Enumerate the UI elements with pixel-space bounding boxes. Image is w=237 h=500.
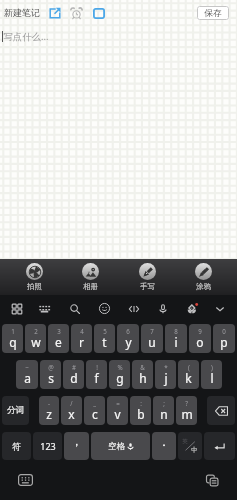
staticText: & [140,363,145,371]
staticText: 5 [103,327,107,335]
staticText: 1 [11,327,15,335]
staticText: 符 [12,441,21,452]
staticText: 写点什么... [3,30,49,43]
staticText: 0 [222,327,226,335]
button[interactable]: Search [64,298,85,319]
button[interactable]: Emoji [94,298,115,319]
button[interactable]: ~ [16,360,38,389]
staticText: i [174,334,178,350]
button[interactable]: Backspace [207,396,235,425]
staticText: t [102,334,107,350]
button[interactable]: Stickers [182,298,203,319]
button[interactable]: * [155,360,176,389]
staticText: 8 [174,327,178,335]
staticText: a [24,370,31,386]
button[interactable]: 0 [213,324,235,353]
button[interactable]: ! [86,360,107,389]
staticText: 保存 [204,8,222,19]
staticText: 空格 [108,441,125,452]
staticText: % [117,363,123,371]
staticText: b [137,406,145,422]
button[interactable]: 保存 [197,6,229,20]
button[interactable]: : [130,396,151,425]
button[interactable]: # [63,360,84,389]
button[interactable]: % [109,360,130,389]
staticText: s [48,370,54,386]
button[interactable]: Keyboard [13,468,37,492]
button[interactable]: Clipboard [123,298,144,319]
button[interactable]: ; [153,396,174,425]
staticText: 涂鸦 [196,282,211,291]
button[interactable]: 空格 [91,432,150,460]
button[interactable]: Clipboard [200,468,224,492]
staticText: x [68,406,75,422]
button[interactable]: 分词 [2,396,29,425]
button[interactable]: 3 [48,324,69,353]
staticText: u [148,334,156,350]
staticText: o [196,334,204,350]
staticText: k [185,370,192,386]
button[interactable]: Voice input [152,298,173,319]
button[interactable]: @ [40,360,61,389]
button[interactable]: 7 [141,324,163,353]
button[interactable]: 4 [71,324,92,353]
staticText: 9 [198,327,202,335]
button[interactable]: _ [84,396,105,425]
button[interactable]: Switch language [178,432,202,460]
button[interactable]: Period [152,432,176,460]
staticText: f [94,370,99,386]
button[interactable]: ) [201,360,222,389]
staticText: = [116,399,120,407]
button[interactable]: 2 [25,324,46,353]
staticText: ) [211,363,213,371]
staticText: # [72,363,76,371]
button[interactable]: / [61,396,82,425]
button[interactable]: 6 [117,324,139,353]
staticText: j [164,370,168,386]
button[interactable]: Keyboard layouts [34,298,55,319]
staticText: _ [93,399,96,407]
button[interactable]: 拍照 [12,259,56,295]
button[interactable]: = [107,396,128,425]
button[interactable]: Comma [64,432,89,460]
button[interactable]: ? [176,396,197,425]
button[interactable]: - [39,396,59,425]
staticText: y [125,334,132,350]
button[interactable]: 123 [33,432,62,460]
button[interactable]: & [132,360,153,389]
staticText: l [210,370,214,386]
staticText: 123 [40,440,56,452]
staticText: 分词 [7,405,24,416]
button[interactable]: Checklist [92,6,106,20]
button[interactable]: Reminder [69,6,83,20]
button[interactable]: 1 [2,324,23,353]
button[interactable]: 9 [189,324,211,353]
staticText: 7 [150,327,154,335]
staticText: 相册 [83,282,98,291]
button[interactable]: 相册 [68,259,112,295]
staticText: n [160,406,168,422]
button[interactable]: 8 [165,324,187,353]
button[interactable]: 涂鸦 [181,259,225,295]
button[interactable]: 5 [94,324,115,353]
button[interactable]: Export [48,6,62,20]
staticText: m [181,406,193,422]
staticText: / [70,399,73,407]
button[interactable]: Collapse keyboard [209,298,230,319]
staticText: @ [48,363,54,371]
button[interactable]: 符 [2,432,31,460]
button[interactable]: Apps [6,298,27,319]
button[interactable]: ( [178,360,199,389]
staticText: z [46,406,52,422]
button[interactable]: 手写 [125,259,169,295]
staticText: ! [96,363,98,371]
staticText: 2 [34,327,38,335]
staticText: 拍照 [27,282,42,291]
staticText: h [139,370,147,386]
staticText: p [220,334,228,350]
staticText: d [70,370,78,386]
staticText: * [164,363,168,371]
button[interactable]: Enter [204,432,235,460]
staticText: 新建笔记 [4,7,40,18]
staticText: 中 [191,446,198,454]
